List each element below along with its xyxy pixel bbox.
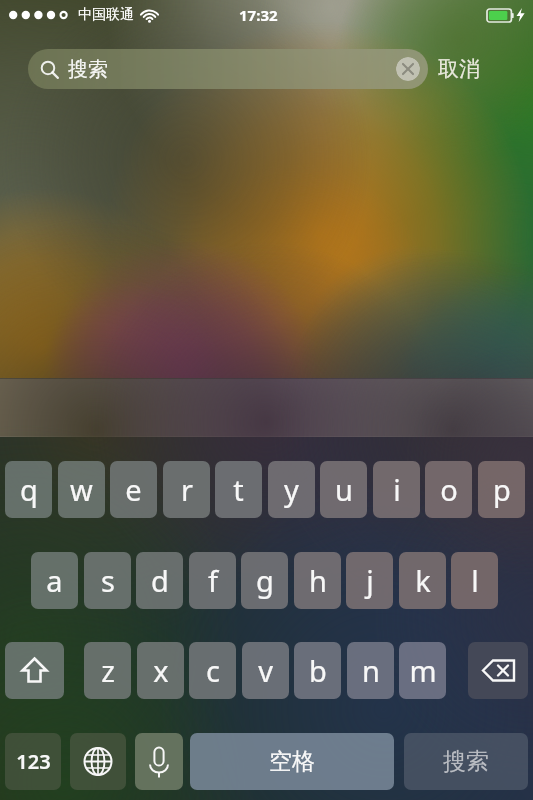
button[interactable]: u (320, 461, 367, 518)
button[interactable]: 123 (5, 733, 61, 790)
button[interactable]: x (137, 642, 184, 699)
button[interactable]: Switch keyboard (70, 733, 126, 790)
staticText: 搜索 (68, 57, 108, 82)
staticText: v (258, 651, 273, 690)
staticText: m (409, 651, 437, 690)
staticText: n (362, 651, 380, 690)
button[interactable]: s (84, 552, 131, 609)
button[interactable]: 取消 (438, 47, 480, 91)
staticText: c (206, 651, 220, 690)
button[interactable]: o (425, 461, 472, 518)
staticText: h (309, 561, 327, 600)
staticText: k (415, 561, 431, 600)
button[interactable]: z (84, 642, 131, 699)
staticText: q (20, 470, 38, 509)
staticText: u (335, 470, 353, 509)
staticText: 搜索 (443, 747, 489, 776)
button[interactable]: n (347, 642, 394, 699)
button[interactable]: k (399, 552, 446, 609)
staticText: o (440, 470, 458, 509)
staticText: t (233, 470, 244, 509)
button[interactable]: 空格 (190, 733, 394, 790)
button[interactable]: b (294, 642, 341, 699)
button[interactable]: m (399, 642, 446, 699)
staticText: a (46, 561, 63, 600)
button[interactable]: p (478, 461, 525, 518)
staticText: w (70, 470, 93, 509)
staticText: 取消 (438, 56, 480, 82)
staticText: f (208, 561, 218, 600)
button[interactable]: t (215, 461, 262, 518)
staticText: j (366, 561, 374, 600)
button[interactable]: e (110, 461, 157, 518)
button[interactable]: g (241, 552, 288, 609)
button[interactable]: 搜索 (28, 49, 428, 89)
staticText: 中国联通 (78, 6, 134, 24)
button[interactable]: q (5, 461, 52, 518)
staticText: s (101, 561, 115, 600)
staticText: r (181, 470, 193, 509)
button[interactable]: y (268, 461, 315, 518)
staticText: p (493, 470, 511, 509)
staticText: y (284, 470, 299, 509)
staticText: i (393, 470, 401, 509)
button[interactable]: w (58, 461, 105, 518)
button[interactable]: f (189, 552, 236, 609)
button[interactable]: Dictation (135, 733, 183, 790)
button[interactable]: l (451, 552, 498, 609)
staticText: b (309, 651, 327, 690)
button[interactable]: r (163, 461, 210, 518)
button[interactable]: a (31, 552, 78, 609)
staticText: 空格 (269, 747, 315, 776)
staticText: z (101, 651, 115, 690)
button[interactable]: d (136, 552, 183, 609)
button[interactable]: Clear search (396, 57, 420, 81)
button[interactable]: Delete (468, 642, 528, 699)
staticText: d (151, 561, 169, 600)
button[interactable]: i (373, 461, 420, 518)
staticText: e (125, 470, 142, 509)
button[interactable]: 搜索 (404, 733, 528, 790)
staticText: x (153, 651, 169, 690)
button[interactable]: v (242, 642, 289, 699)
staticText: g (256, 561, 274, 600)
button[interactable]: c (189, 642, 236, 699)
button[interactable]: Shift (5, 642, 64, 699)
staticText: 123 (16, 748, 51, 775)
staticText: l (471, 561, 479, 600)
staticText: 17:32 (239, 5, 278, 25)
button[interactable]: h (294, 552, 341, 609)
button[interactable]: j (346, 552, 393, 609)
